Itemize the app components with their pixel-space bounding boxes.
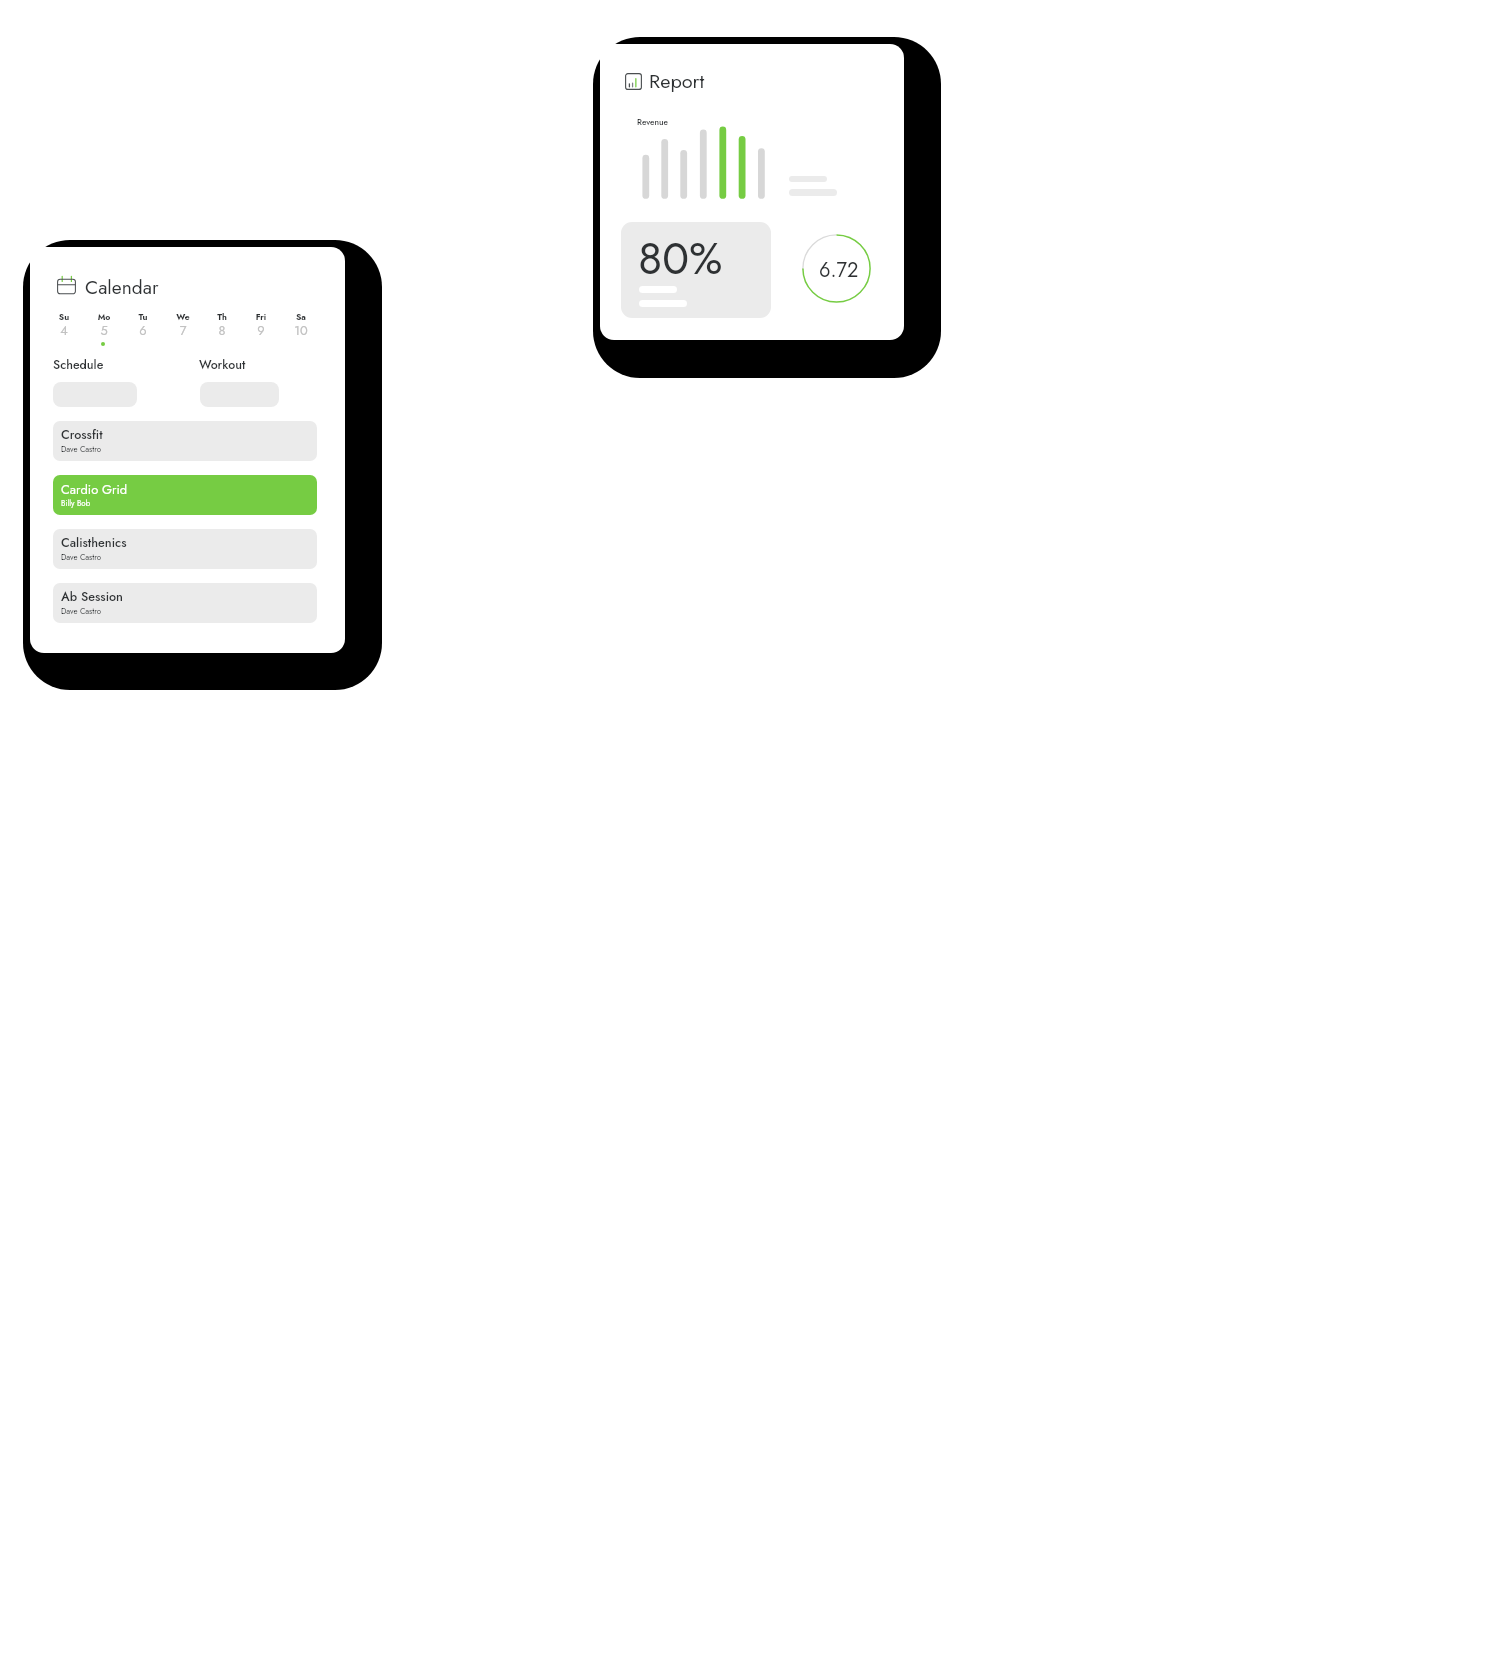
button[interactable]: Mo (85, 310, 123, 341)
staticText: Th (203, 311, 241, 323)
staticText: Dave Castro (61, 606, 102, 617)
staticText: 6 (124, 321, 162, 339)
button[interactable]: 6.72 (802, 234, 871, 303)
button[interactable]: Fri (242, 310, 280, 341)
staticText: 8 (203, 321, 241, 339)
staticText: 4 (45, 321, 83, 339)
button[interactable]: Th (203, 310, 241, 341)
other: Calendar (57, 276, 76, 295)
staticText: Mo (85, 311, 123, 323)
staticText: 10 (282, 321, 320, 339)
button[interactable]: 80% (621, 222, 771, 318)
button[interactable]: Sa (282, 310, 320, 341)
button[interactable]: Tu (124, 310, 162, 341)
staticText: Sa (282, 311, 320, 323)
staticText: Su (45, 311, 83, 323)
staticText: Cardio Grid (61, 480, 128, 499)
staticText: Schedule (53, 356, 104, 374)
staticText: Dave Castro (61, 552, 102, 563)
button[interactable]: Ab Session (53, 583, 317, 623)
staticText: Report (649, 67, 705, 96)
button[interactable] (200, 382, 279, 407)
staticText: Calendar (85, 273, 159, 301)
button[interactable]: Su (45, 310, 83, 341)
button[interactable]: Calisthenics (53, 529, 317, 569)
staticText: Tu (124, 311, 162, 323)
button[interactable]: Crossfit (53, 421, 317, 461)
button[interactable]: We (164, 310, 202, 341)
staticText: 6.72 (819, 256, 859, 285)
staticText: Calisthenics (61, 534, 127, 552)
staticText: 5 (85, 321, 123, 339)
staticText: 80% (638, 226, 723, 290)
staticText: Billy Bob (61, 498, 91, 509)
staticText: 7 (164, 321, 202, 339)
staticText: We (164, 311, 202, 323)
staticText: Dave Castro (61, 444, 102, 455)
staticText: 9 (242, 321, 280, 339)
staticText: Revenue (637, 116, 669, 128)
staticText: Ab Session (61, 588, 123, 606)
staticText: Fri (242, 311, 280, 323)
staticText: Crossfit (61, 426, 103, 444)
button[interactable]: Cardio Grid (53, 475, 317, 515)
staticText: Workout (199, 356, 246, 374)
other: Report (625, 73, 642, 90)
